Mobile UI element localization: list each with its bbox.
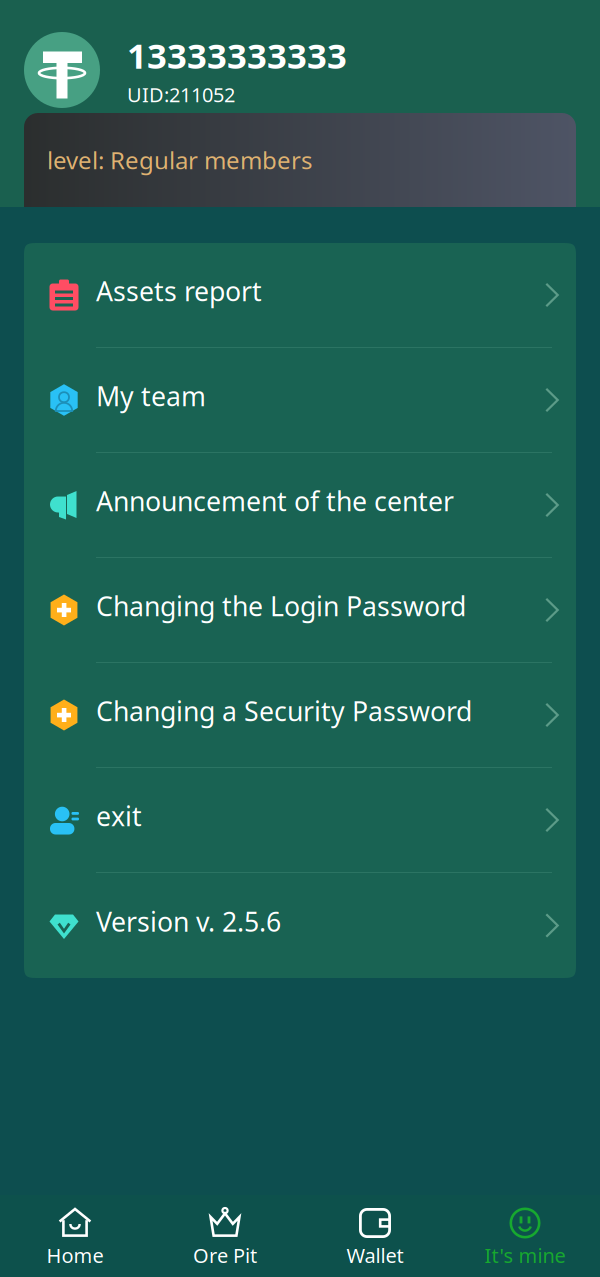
- button[interactable]: It's mine: [450, 1195, 600, 1277]
- staticText: Changing a Security Password: [96, 693, 472, 729]
- button[interactable]: Announcement of the center: [24, 453, 576, 558]
- button[interactable]: Wallet: [300, 1195, 450, 1277]
- staticText: Version v. 2.5.6: [96, 904, 281, 939]
- staticText: exit: [96, 798, 142, 834]
- staticText: Home: [46, 1242, 103, 1269]
- button[interactable]: Version v. 2.5.6: [24, 873, 576, 978]
- button[interactable]: My team: [24, 348, 576, 453]
- staticText: level: Regular members: [47, 144, 312, 176]
- button[interactable]: Changing a Security Password: [24, 663, 576, 768]
- staticText: UID:211052: [127, 81, 235, 108]
- staticText: Assets report: [96, 273, 262, 309]
- button[interactable]: Ore Pit: [150, 1195, 300, 1277]
- button[interactable]: Assets report: [24, 243, 576, 348]
- staticText: It's mine: [484, 1242, 565, 1269]
- button[interactable]: Home: [0, 1195, 150, 1277]
- staticText: Changing the Login Password: [96, 588, 466, 624]
- staticText: Ore Pit: [193, 1242, 257, 1269]
- button[interactable]: Changing the Login Password: [24, 558, 576, 663]
- staticText: Wallet: [346, 1242, 403, 1269]
- staticText: 13333333333: [127, 32, 347, 78]
- staticText: My team: [96, 378, 206, 414]
- staticText: Announcement of the center: [96, 483, 454, 519]
- button[interactable]: exit: [24, 768, 576, 873]
